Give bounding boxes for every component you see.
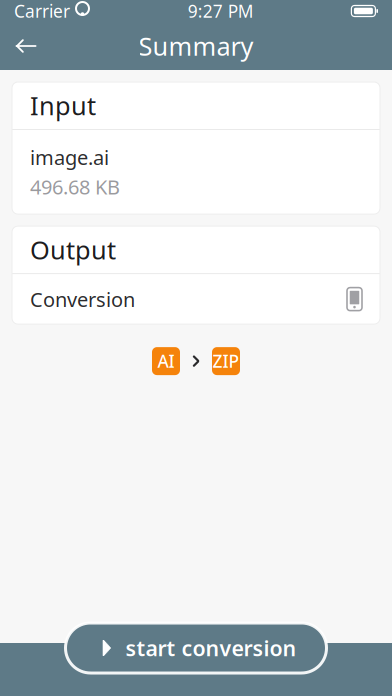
staticText: start conversion [125,634,296,662]
button[interactable]: image.ai [12,130,380,214]
staticText: Carrier [14,0,70,22]
staticText: Summary [138,29,253,63]
button[interactable]: Back [0,22,52,70]
staticText: ZIP [212,350,239,373]
button[interactable]: Conversion [12,274,380,324]
staticText: Output [30,233,116,266]
staticText: AI [157,350,174,373]
staticText: 496.68 KB [30,174,120,200]
staticText: image.ai [30,144,109,171]
staticText: Input [30,89,96,122]
staticText: 9:27 PM [188,0,254,22]
staticText: Conversion [30,286,135,312]
button[interactable]: start conversion [65,623,326,673]
